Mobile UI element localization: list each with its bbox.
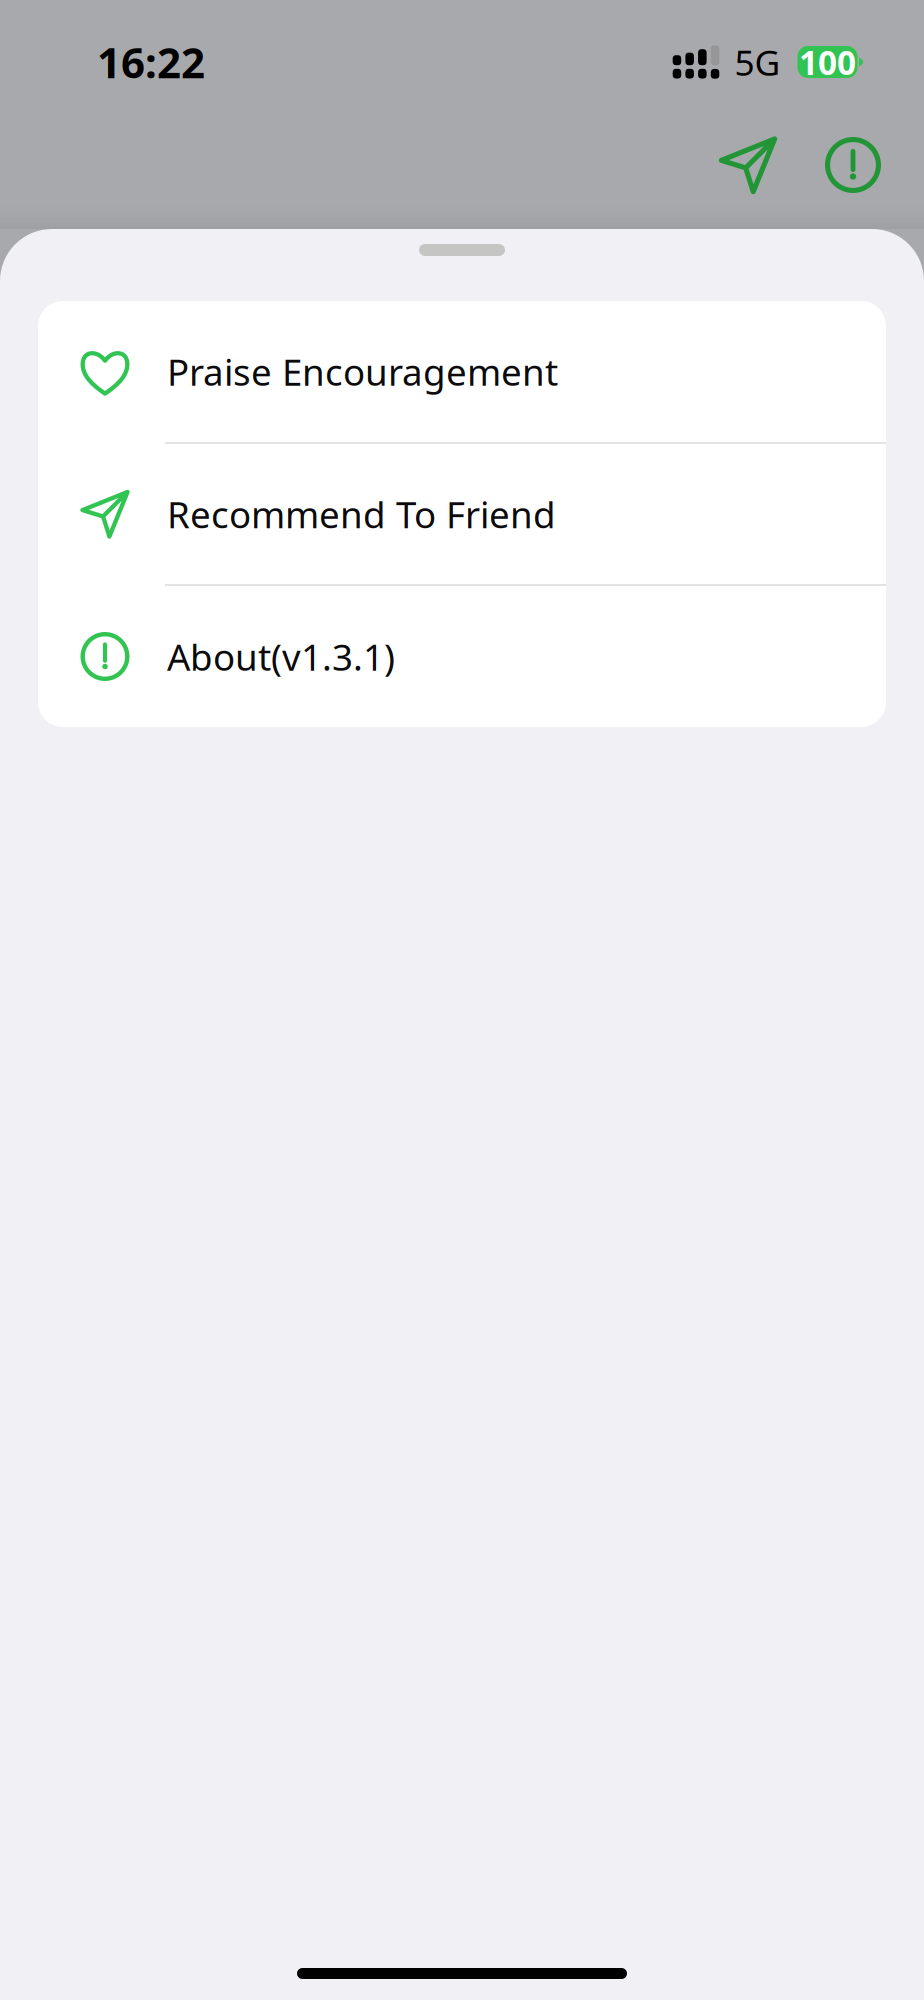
staticText: 5G xyxy=(734,38,780,86)
button[interactable]: About(v1.3.1) xyxy=(38,586,886,727)
button[interactable]: Recommend To Friend xyxy=(38,444,886,586)
button[interactable]: About xyxy=(824,136,882,194)
staticText: 16:22 xyxy=(97,33,205,91)
button[interactable]: Praise Encouragement xyxy=(38,301,886,444)
staticText: 100 xyxy=(799,39,856,85)
staticText: About(v1.3.1) xyxy=(167,631,395,681)
button[interactable]: Share xyxy=(719,136,777,194)
staticText: Recommend To Friend xyxy=(167,489,556,539)
staticText: Praise Encouragement xyxy=(167,346,558,396)
